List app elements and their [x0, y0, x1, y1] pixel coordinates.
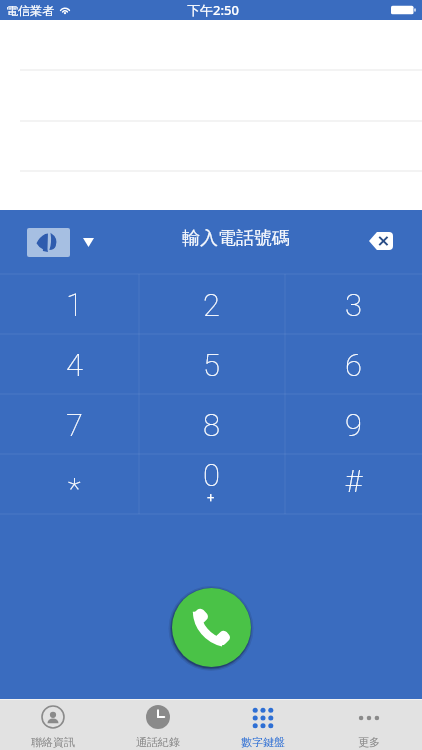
- button[interactable]: 0: [139, 454, 285, 514]
- staticText: 7: [66, 407, 83, 443]
- staticText: 數字鍵盤: [241, 735, 285, 749]
- staticText: 8: [203, 407, 220, 443]
- staticText: 9: [345, 407, 362, 443]
- button[interactable]: 6: [285, 334, 422, 394]
- staticText: 輸入電話號碼: [182, 227, 290, 250]
- staticText: +: [207, 490, 215, 505]
- button[interactable]: 數字鍵盤: [210, 699, 316, 750]
- staticText: 電信業者: [6, 3, 54, 18]
- staticText: 5: [203, 347, 220, 383]
- button[interactable]: 更多: [316, 699, 422, 750]
- button[interactable]: 聯絡資訊: [0, 699, 105, 750]
- staticText: 4: [66, 347, 83, 383]
- staticText: 1: [66, 287, 83, 323]
- button[interactable]: 8: [139, 394, 285, 454]
- button[interactable]: 4: [0, 334, 139, 394]
- staticText: 3: [345, 287, 362, 323]
- button[interactable]: Expand: [83, 238, 94, 247]
- button[interactable]: 2: [139, 274, 285, 334]
- button[interactable]: #: [285, 454, 422, 514]
- button[interactable]: 9: [285, 394, 422, 454]
- button[interactable]: 7: [0, 394, 139, 454]
- staticText: 0: [203, 457, 220, 493]
- button[interactable]: Delete: [363, 224, 399, 258]
- staticText: 通話紀錄: [136, 735, 180, 749]
- staticText: *: [68, 471, 81, 506]
- button[interactable]: 5: [139, 334, 285, 394]
- button[interactable]: 1: [0, 274, 139, 334]
- button[interactable]: Call: [172, 588, 251, 667]
- staticText: 下午2:50: [187, 1, 239, 19]
- staticText: 更多: [358, 735, 380, 749]
- button[interactable]: *: [0, 454, 139, 514]
- staticText: 6: [345, 347, 362, 383]
- button[interactable]: Select line: [27, 228, 70, 257]
- staticText: #: [345, 463, 362, 499]
- staticText: 2: [203, 287, 220, 323]
- staticText: 聯絡資訊: [31, 735, 75, 749]
- button[interactable]: 通話紀錄: [105, 699, 210, 750]
- button[interactable]: 3: [285, 274, 422, 334]
